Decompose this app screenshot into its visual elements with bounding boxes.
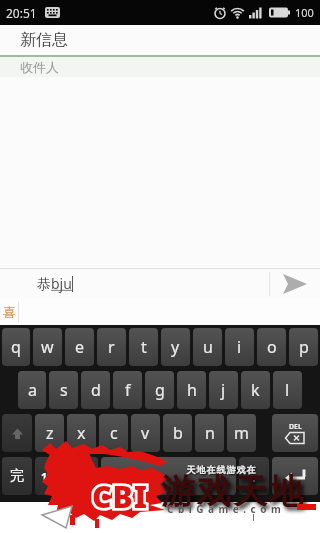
button[interactable]: u bbox=[193, 328, 222, 366]
staticText: 游戏天地 bbox=[160, 470, 304, 513]
button[interactable]: DEL bbox=[272, 414, 318, 452]
button[interactable]: t bbox=[129, 328, 158, 366]
button[interactable]: . bbox=[239, 457, 269, 495]
staticText: z bbox=[46, 422, 54, 444]
button[interactable]: m bbox=[227, 414, 256, 452]
staticText: 123 bbox=[41, 469, 60, 484]
staticText: a bbox=[28, 379, 37, 401]
staticText: 天地在线游戏在 bbox=[186, 464, 256, 475]
staticText: r bbox=[108, 336, 115, 358]
button[interactable]: v bbox=[131, 414, 160, 452]
button[interactable]: n bbox=[195, 414, 224, 452]
staticText: 新信息 bbox=[20, 30, 68, 50]
button[interactable]: l bbox=[273, 371, 302, 409]
button[interactable]: g bbox=[145, 371, 174, 409]
button[interactable]: k bbox=[241, 371, 270, 409]
staticText: CBI bbox=[92, 476, 148, 517]
staticText: s bbox=[60, 379, 68, 401]
staticText: v bbox=[141, 422, 150, 444]
button[interactable]: r bbox=[97, 328, 126, 366]
button[interactable] bbox=[2, 414, 32, 452]
button[interactable]: w bbox=[33, 328, 62, 366]
staticText: y bbox=[171, 336, 180, 358]
staticText: . bbox=[252, 467, 256, 486]
button[interactable]: o bbox=[257, 328, 286, 366]
staticText: p bbox=[299, 336, 309, 358]
staticText: u bbox=[203, 336, 213, 358]
staticText: w bbox=[41, 336, 54, 358]
staticText: 20:51 bbox=[6, 5, 37, 21]
staticText: k bbox=[251, 379, 260, 401]
button[interactable]: x bbox=[67, 414, 96, 452]
button[interactable]: 完 bbox=[2, 457, 32, 495]
button[interactable]: f bbox=[113, 371, 142, 409]
staticText: d bbox=[91, 379, 101, 401]
button[interactable] bbox=[101, 457, 236, 495]
button[interactable]: d bbox=[81, 371, 110, 409]
staticText: o bbox=[267, 336, 277, 358]
button[interactable]: e bbox=[65, 328, 94, 366]
button[interactable]: q bbox=[2, 328, 30, 366]
button[interactable]: i bbox=[225, 328, 254, 366]
button[interactable] bbox=[270, 269, 320, 298]
staticText: g bbox=[155, 379, 165, 401]
button[interactable]: z bbox=[35, 414, 64, 452]
staticText: CBI bbox=[92, 476, 148, 517]
button[interactable]: c bbox=[99, 414, 128, 452]
staticText: j bbox=[221, 379, 226, 401]
staticText: 完 bbox=[10, 467, 24, 485]
button[interactable]: 收件人 bbox=[0, 57, 320, 77]
staticText: t bbox=[141, 336, 147, 358]
staticText: b bbox=[173, 422, 183, 444]
staticText: x bbox=[77, 422, 86, 444]
staticText: h bbox=[187, 379, 197, 401]
staticText: q bbox=[11, 336, 21, 358]
button[interactable]: a bbox=[18, 371, 46, 409]
staticText: l bbox=[285, 379, 290, 401]
button[interactable] bbox=[272, 457, 318, 495]
staticText: 喜 bbox=[3, 304, 16, 320]
button[interactable]: y bbox=[161, 328, 190, 366]
button[interactable]: p bbox=[289, 328, 318, 366]
button[interactable]: 喜 bbox=[0, 298, 18, 325]
button[interactable]: b bbox=[163, 414, 192, 452]
staticText: 收件人 bbox=[20, 59, 59, 75]
staticText: n bbox=[205, 422, 215, 444]
staticText: f bbox=[125, 379, 131, 401]
staticText: 100 bbox=[295, 5, 314, 20]
button[interactable]: 123 bbox=[35, 457, 65, 495]
staticText: c bbox=[110, 422, 118, 444]
button[interactable]: , bbox=[68, 457, 98, 495]
button[interactable]: j bbox=[209, 371, 238, 409]
staticText: e bbox=[75, 336, 85, 358]
staticText: CbiGame.com bbox=[167, 502, 286, 516]
staticText: 恭bju bbox=[37, 274, 72, 293]
button[interactable]: s bbox=[49, 371, 78, 409]
button[interactable]: h bbox=[177, 371, 206, 409]
staticText: DEL bbox=[289, 422, 302, 432]
staticText: m bbox=[234, 422, 249, 444]
staticText: i bbox=[237, 336, 242, 358]
